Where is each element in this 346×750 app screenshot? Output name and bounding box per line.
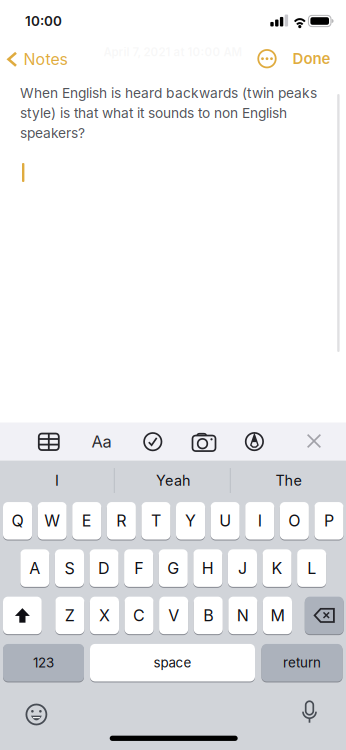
button[interactable]: Yeah [123, 465, 223, 495]
button[interactable]: C [124, 596, 154, 635]
button[interactable]: S [55, 548, 84, 588]
staticText: 10:00 [25, 13, 62, 29]
staticText: speakers? [20, 125, 85, 141]
staticText: Q [12, 511, 24, 530]
button[interactable]: M [263, 596, 292, 635]
button[interactable]: L [297, 548, 326, 588]
button[interactable]: R [107, 501, 136, 540]
button[interactable] [305, 596, 344, 635]
staticText: Z [65, 606, 75, 625]
staticText: J [238, 558, 247, 578]
staticText: F [134, 558, 143, 578]
staticText: space [153, 655, 191, 671]
staticText: V [168, 606, 179, 625]
button[interactable] [246, 433, 263, 450]
staticText: W [44, 511, 60, 530]
button[interactable] [144, 433, 161, 450]
staticText: B [203, 606, 213, 625]
button[interactable]: K [262, 548, 292, 588]
button[interactable]: Aa [91, 432, 111, 451]
staticText: U [219, 511, 231, 530]
staticText: The [275, 472, 301, 489]
staticText: I [55, 472, 59, 489]
staticText: S [64, 558, 74, 578]
button[interactable]: F [124, 548, 153, 588]
staticText: L [307, 558, 316, 578]
staticText: N [237, 606, 249, 625]
staticText: I [258, 511, 262, 530]
button[interactable]: 123 [3, 643, 84, 682]
button[interactable]: N [228, 596, 257, 635]
staticText: Y [185, 511, 196, 530]
button[interactable]: U [211, 501, 240, 540]
staticText: When English is heard backwards (twin pe… [20, 85, 317, 101]
button[interactable] [26, 704, 46, 724]
staticText: Done [292, 49, 330, 67]
staticText: K [272, 558, 283, 578]
button[interactable]: E [72, 501, 101, 540]
button[interactable]: Z [55, 596, 84, 635]
button[interactable]: The [238, 465, 338, 495]
button[interactable]: I [7, 465, 107, 495]
button[interactable]: Q [3, 501, 32, 540]
staticText: G [167, 558, 179, 578]
button[interactable]: X [90, 596, 119, 635]
staticText: O [288, 511, 300, 530]
staticText: T [151, 511, 161, 530]
button[interactable]: Y [176, 501, 205, 540]
button[interactable]: O [280, 501, 309, 540]
button[interactable]: T [141, 501, 170, 540]
staticText: Yeah [156, 472, 191, 489]
staticText: style) is that what it sounds to non Eng… [20, 105, 287, 121]
button[interactable]: A [20, 548, 49, 588]
button[interactable]: P [314, 501, 343, 540]
button[interactable]: I [245, 501, 274, 540]
button[interactable]: J [228, 548, 257, 588]
staticText: 123 [33, 655, 54, 671]
button[interactable]: G [159, 548, 188, 588]
button[interactable] [39, 434, 59, 450]
button[interactable]: space [90, 643, 255, 682]
button[interactable] [258, 50, 276, 67]
staticText: D [98, 558, 110, 578]
staticText: E [82, 511, 92, 530]
button[interactable]: Done [292, 49, 330, 67]
button[interactable] [302, 705, 316, 719]
staticText: P [324, 511, 334, 530]
button[interactable]: return [261, 643, 342, 682]
button[interactable]: D [89, 548, 119, 588]
button[interactable]: Notes [7, 47, 73, 71]
button[interactable] [192, 435, 215, 450]
button[interactable] [3, 596, 42, 635]
staticText: H [202, 558, 214, 578]
staticText: return [283, 655, 321, 671]
staticText: M [270, 606, 284, 625]
staticText: C [133, 606, 145, 625]
staticText: Aa [91, 432, 111, 451]
button[interactable] [307, 434, 321, 448]
button[interactable]: W [38, 501, 67, 540]
button[interactable]: B [194, 596, 223, 635]
staticText: X [99, 606, 110, 625]
staticText: R [116, 511, 126, 530]
staticText: A [29, 558, 40, 578]
button[interactable]: H [193, 548, 222, 588]
button[interactable]: V [159, 596, 188, 635]
staticText: Notes [23, 50, 67, 69]
